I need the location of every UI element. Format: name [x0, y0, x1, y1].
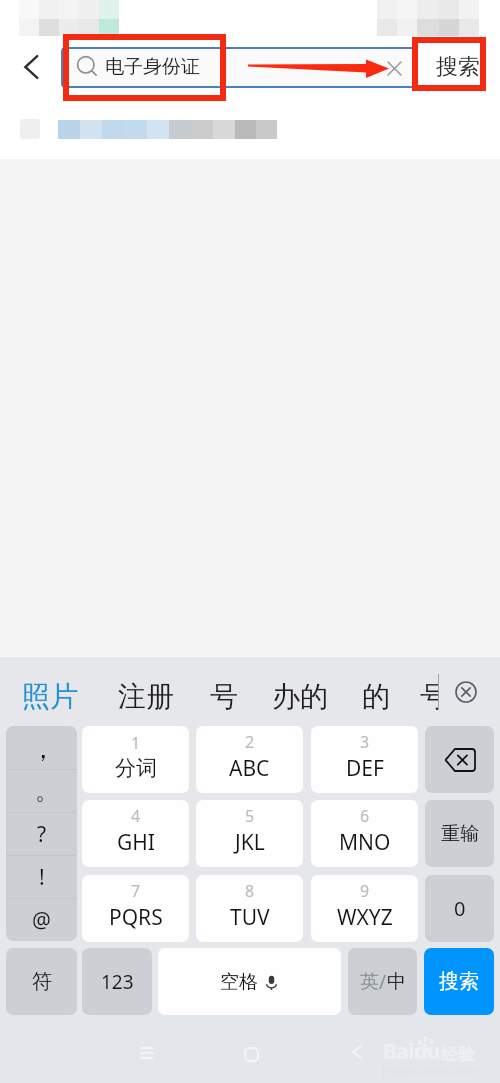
- staticText: ABC: [229, 754, 270, 783]
- staticText: ?: [37, 820, 47, 849]
- staticText: 号: [210, 679, 238, 714]
- staticText: WXYZ: [337, 903, 393, 932]
- staticText: 搜索: [439, 969, 479, 994]
- staticText: 3: [360, 731, 370, 753]
- button[interactable]: 。: [6, 770, 77, 812]
- staticText: 8: [245, 880, 255, 902]
- button[interactable]: 办的: [262, 679, 340, 726]
- button[interactable]: 0: [425, 875, 494, 942]
- button[interactable]: Clear: [382, 56, 406, 80]
- staticText: 6: [360, 805, 370, 827]
- staticText: 0: [454, 895, 466, 922]
- staticText: 2: [245, 731, 255, 753]
- staticText: 9: [360, 880, 370, 902]
- staticText: 经验: [441, 1044, 475, 1065]
- staticText: 英: [360, 970, 379, 994]
- button[interactable]: 符: [6, 948, 77, 1015]
- button[interactable]: 1: [82, 726, 189, 793]
- staticText: Baidu: [383, 1037, 440, 1066]
- button[interactable]: 7: [82, 875, 189, 942]
- button[interactable]: 3: [311, 726, 418, 793]
- button[interactable]: 123: [82, 948, 152, 1015]
- staticText: 123: [101, 969, 134, 995]
- button[interactable]: Delete: [425, 726, 494, 793]
- staticText: 的: [362, 679, 390, 714]
- button[interactable]: 电子身份证: [61, 47, 418, 88]
- button[interactable]: 8: [196, 875, 303, 942]
- button[interactable]: ，: [6, 726, 77, 769]
- button[interactable]: 2: [196, 726, 303, 793]
- staticText: JKL: [235, 828, 265, 857]
- staticText: 搜索: [436, 53, 480, 81]
- staticText: MNO: [339, 828, 391, 857]
- staticText: 1: [131, 732, 141, 754]
- button[interactable]: 照片: [12, 679, 90, 726]
- button[interactable]: 的: [352, 679, 401, 726]
- staticText: GHI: [117, 828, 155, 857]
- staticText: 重输: [441, 822, 479, 846]
- button[interactable]: 5: [196, 800, 303, 867]
- staticText: TUV: [230, 903, 270, 932]
- button[interactable]: ?: [6, 813, 77, 855]
- staticText: 号: [420, 679, 438, 714]
- button[interactable]: 搜索: [424, 948, 494, 1015]
- staticText: ，: [30, 733, 56, 766]
- button[interactable]: 6: [311, 800, 418, 867]
- staticText: 。: [35, 776, 59, 806]
- staticText: 符: [32, 969, 52, 994]
- staticText: 办的: [272, 679, 328, 714]
- button[interactable]: Back: [6, 43, 54, 91]
- button[interactable]: !: [6, 856, 77, 898]
- staticText: 注册: [118, 679, 174, 714]
- button[interactable]: 注册: [108, 679, 186, 726]
- staticText: 5: [245, 805, 255, 827]
- staticText: 7: [131, 880, 141, 902]
- button[interactable]: 搜索: [419, 40, 485, 88]
- button[interactable]: Hide keyboard: [448, 674, 484, 710]
- button[interactable]: @: [6, 899, 77, 941]
- button[interactable]: 号: [410, 679, 438, 726]
- button[interactable]: 重输: [425, 800, 494, 867]
- staticText: DEF: [346, 754, 384, 783]
- staticText: /: [379, 969, 387, 995]
- button[interactable]: 英: [348, 948, 417, 1015]
- staticText: @: [32, 906, 51, 935]
- staticText: 电子身份证: [105, 55, 200, 79]
- button[interactable]: 9: [311, 875, 418, 942]
- staticText: 4: [131, 805, 141, 827]
- button[interactable]: 4: [82, 800, 189, 867]
- staticText: 空格: [220, 970, 258, 994]
- staticText: 照片: [22, 679, 78, 714]
- staticText: 中: [387, 970, 406, 994]
- button[interactable]: 空格: [158, 948, 341, 1015]
- staticText: PQRS: [109, 903, 163, 932]
- button[interactable]: 号: [200, 679, 249, 726]
- staticText: 分词: [115, 755, 157, 781]
- staticText: !: [39, 863, 45, 892]
